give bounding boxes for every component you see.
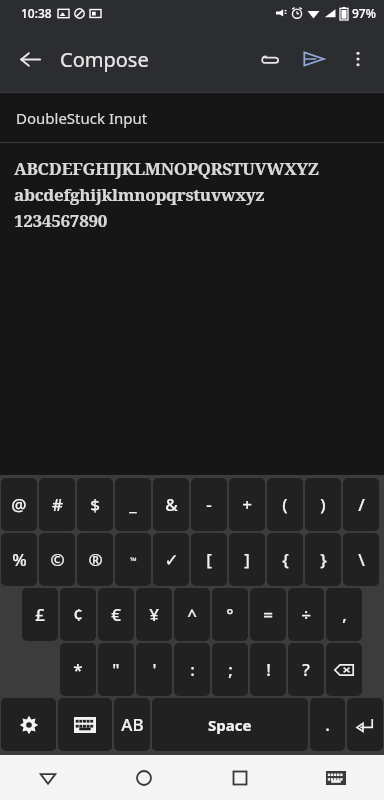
- button[interactable]: £: [22, 588, 58, 641]
- button[interactable]: AB: [114, 698, 150, 751]
- staticText: ]: [244, 548, 250, 571]
- staticText: abcdefghijklmnopqrstuvwxyz: [14, 183, 265, 206]
- staticText: ;: [228, 658, 233, 681]
- button[interactable]: {: [267, 533, 303, 586]
- staticText: !: [266, 658, 271, 681]
- staticText: ¥: [149, 603, 159, 626]
- button[interactable]: °: [212, 588, 248, 641]
- button[interactable]: Back: [0, 755, 96, 800]
- staticText: ¢: [73, 603, 83, 626]
- staticText: 97%: [352, 5, 376, 21]
- staticText: %: [12, 548, 27, 571]
- button[interactable]: *: [60, 643, 96, 696]
- staticText: ?: [302, 658, 310, 681]
- button[interactable]: ,: [326, 588, 362, 641]
- staticText: £: [35, 603, 45, 626]
- staticText: ©: [50, 548, 65, 571]
- staticText: ÷: [301, 603, 311, 626]
- button[interactable]: ): [305, 478, 341, 531]
- button[interactable]: #: [39, 478, 75, 531]
- button[interactable]: ABCDEFGHIJKLMNOPQRSTUVWXYZ: [14, 157, 384, 232]
- button[interactable]: Send: [292, 37, 336, 81]
- staticText: *: [73, 658, 83, 681]
- button[interactable]: [: [191, 533, 227, 586]
- button[interactable]: Switch keyboard: [58, 698, 112, 751]
- button[interactable]: -: [191, 478, 227, 531]
- button[interactable]: Enter: [347, 698, 383, 751]
- staticText: Compose: [60, 46, 149, 73]
- button[interactable]: ÷: [288, 588, 324, 641]
- button[interactable]: ✓: [153, 533, 189, 586]
- staticText: :: [190, 658, 195, 681]
- button[interactable]: %: [1, 533, 37, 586]
- staticText: #: [52, 493, 63, 516]
- staticText: ,: [342, 603, 347, 626]
- staticText: 10:38: [21, 5, 52, 21]
- staticText: (: [282, 493, 288, 516]
- staticText: @: [11, 493, 27, 516]
- staticText: $: [90, 493, 100, 516]
- staticText: 1234567890: [14, 209, 108, 232]
- button[interactable]: ": [98, 643, 134, 696]
- button[interactable]: Space: [152, 698, 308, 751]
- button[interactable]: More options: [336, 37, 380, 81]
- staticText: -: [206, 493, 212, 516]
- button[interactable]: $: [77, 478, 113, 531]
- button[interactable]: ®: [77, 533, 113, 586]
- staticText: _: [129, 493, 137, 516]
- button[interactable]: Back: [8, 37, 52, 81]
- staticText: ": [112, 658, 120, 681]
- button[interactable]: Recents: [192, 755, 288, 800]
- button[interactable]: ^: [174, 588, 210, 641]
- button[interactable]: ': [136, 643, 172, 696]
- staticText: ^: [187, 603, 197, 626]
- button[interactable]: .: [310, 698, 345, 751]
- button[interactable]: €: [98, 588, 134, 641]
- button[interactable]: ]: [229, 533, 265, 586]
- button[interactable]: &: [153, 478, 189, 531]
- staticText: =: [263, 603, 273, 626]
- button[interactable]: Settings: [1, 698, 56, 751]
- button[interactable]: \: [343, 533, 379, 586]
- button[interactable]: ™: [115, 533, 151, 586]
- staticText: DoubleStuck Input: [16, 108, 148, 128]
- button[interactable]: Keyboard: [288, 755, 384, 800]
- staticText: °: [226, 603, 234, 626]
- staticText: ': [152, 658, 157, 681]
- staticText: &: [165, 493, 178, 516]
- staticText: .: [325, 713, 330, 736]
- staticText: }: [320, 548, 327, 571]
- staticText: {: [282, 548, 289, 571]
- button[interactable]: ©: [39, 533, 75, 586]
- button[interactable]: :: [174, 643, 210, 696]
- button[interactable]: /: [343, 478, 379, 531]
- button[interactable]: Backspace: [326, 643, 362, 696]
- staticText: \: [358, 548, 365, 571]
- staticText: /: [358, 493, 365, 516]
- staticText: ✓: [164, 550, 179, 570]
- staticText: ): [320, 493, 326, 516]
- button[interactable]: =: [250, 588, 286, 641]
- staticText: [: [206, 548, 212, 571]
- button[interactable]: (: [267, 478, 303, 531]
- button[interactable]: ?: [288, 643, 324, 696]
- staticText: AB: [121, 713, 144, 736]
- staticText: €: [111, 603, 121, 626]
- button[interactable]: +: [229, 478, 265, 531]
- button[interactable]: ¢: [60, 588, 96, 641]
- staticText: ABCDEFGHIJKLMNOPQRSTUVWXYZ: [14, 157, 319, 180]
- button[interactable]: DoubleStuck Input: [0, 93, 384, 142]
- button[interactable]: !: [250, 643, 286, 696]
- button[interactable]: ¥: [136, 588, 172, 641]
- button[interactable]: ;: [212, 643, 248, 696]
- staticText: +: [242, 493, 252, 516]
- staticText: ®: [88, 548, 103, 571]
- staticText: Space: [208, 715, 252, 735]
- button[interactable]: }: [305, 533, 341, 586]
- button[interactable]: @: [1, 478, 37, 531]
- staticText: ™: [130, 554, 137, 566]
- button[interactable]: Attach: [248, 37, 292, 81]
- button[interactable]: Home: [96, 755, 192, 800]
- button[interactable]: _: [115, 478, 151, 531]
